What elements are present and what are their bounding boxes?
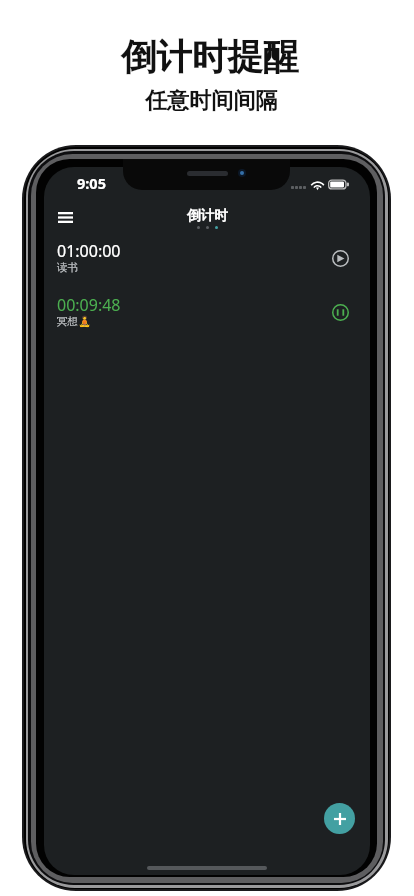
- button[interactable]: Add timer: [324, 803, 355, 834]
- button[interactable]: Start timer: [327, 245, 353, 271]
- button[interactable]: Menu: [47, 202, 83, 232]
- staticText: 01:00:00: [57, 240, 121, 262]
- button[interactable]: 01:00:00: [44, 231, 370, 285]
- button[interactable]: Pause timer: [327, 299, 353, 325]
- button[interactable]: 00:09:48: [44, 285, 370, 339]
- staticText: 任意时间间隔: [145, 87, 278, 115]
- staticText: 读书: [57, 261, 78, 274]
- staticText: 倒计时提醒: [121, 35, 299, 80]
- staticText: 9:05: [77, 173, 106, 193]
- staticText: 00:09:48: [57, 294, 121, 316]
- staticText: 倒计时: [187, 207, 228, 224]
- staticText: 冥想🧘: [57, 315, 92, 328]
